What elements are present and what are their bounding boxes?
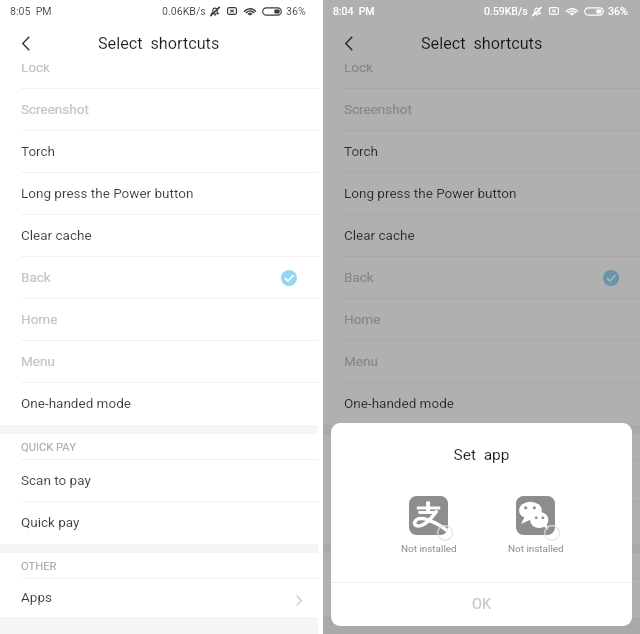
button[interactable]: Back <box>323 257 640 299</box>
staticText: Screenshot <box>21 101 89 117</box>
staticText: Not installed <box>401 543 457 555</box>
staticText: Lock <box>344 64 373 75</box>
staticText: Long press the Power button <box>344 185 517 201</box>
button[interactable]: Torch <box>0 131 318 173</box>
staticText: One-handed mode <box>344 395 454 411</box>
staticText: OK <box>472 596 492 613</box>
staticText: Quick pay <box>21 514 80 530</box>
staticText: Not installed <box>508 543 564 555</box>
staticText: Select shortcuts <box>98 34 220 53</box>
button[interactable]: Back <box>0 257 318 299</box>
staticText: OTHER <box>21 560 57 573</box>
staticText: QUICK PAY <box>21 441 76 454</box>
staticText: 8:05 PM <box>10 5 52 17</box>
button[interactable]: Clear cache <box>0 215 318 257</box>
button[interactable]: Screenshot <box>323 89 640 131</box>
staticText: Home <box>21 311 58 327</box>
button[interactable]: Home <box>0 299 318 341</box>
button[interactable]: Lock <box>323 64 640 89</box>
staticText: Set app <box>331 446 632 464</box>
button[interactable]: Scan to pay <box>0 460 318 502</box>
button[interactable]: Screenshot <box>0 89 318 131</box>
button[interactable]: OK <box>331 582 632 626</box>
button[interactable]: Quick pay <box>323 502 640 544</box>
button[interactable]: Scan to pay <box>323 460 640 502</box>
staticText: 8:04 PM <box>333 5 375 17</box>
staticText: One-handed mode <box>21 395 131 411</box>
button[interactable]: Menu <box>0 341 318 383</box>
staticText: 0.59KB/s <box>484 5 528 17</box>
staticText: 0.06KB/s <box>162 5 206 17</box>
staticText: Scan to pay <box>21 472 91 488</box>
staticText: Lock <box>21 64 50 75</box>
staticText: Home <box>344 311 381 327</box>
staticText: 36% <box>286 5 306 17</box>
button[interactable]: Clear cache <box>323 215 640 257</box>
staticText: Clear cache <box>344 227 415 243</box>
staticText: Menu <box>344 353 378 369</box>
button[interactable]: Home <box>323 299 640 341</box>
staticText: Menu <box>21 353 55 369</box>
staticText: Long press the Power button <box>21 185 194 201</box>
staticText: 36% <box>608 5 628 17</box>
staticText: Clear cache <box>21 227 92 243</box>
button[interactable]: Apps <box>323 579 640 617</box>
staticText: Select shortcuts <box>421 34 543 53</box>
staticText: Torch <box>21 143 56 159</box>
button[interactable]: Apps <box>0 579 318 617</box>
button[interactable]: Long press the Power button <box>323 173 640 215</box>
button[interactable]: Torch <box>323 131 640 173</box>
staticText: Back <box>344 269 374 285</box>
button[interactable]: One-handed mode <box>323 383 640 425</box>
button[interactable]: One-handed mode <box>0 383 318 425</box>
button[interactable]: Back <box>0 22 48 64</box>
staticText: Back <box>21 269 51 285</box>
button[interactable]: Long press the Power button <box>0 173 318 215</box>
button[interactable]: Menu <box>323 341 640 383</box>
staticText: Screenshot <box>344 101 412 117</box>
button[interactable]: Quick pay <box>0 502 318 544</box>
button[interactable]: Back <box>323 22 371 64</box>
button[interactable]: Lock <box>0 64 318 89</box>
staticText: Apps <box>21 589 52 605</box>
staticText: Torch <box>344 143 379 159</box>
